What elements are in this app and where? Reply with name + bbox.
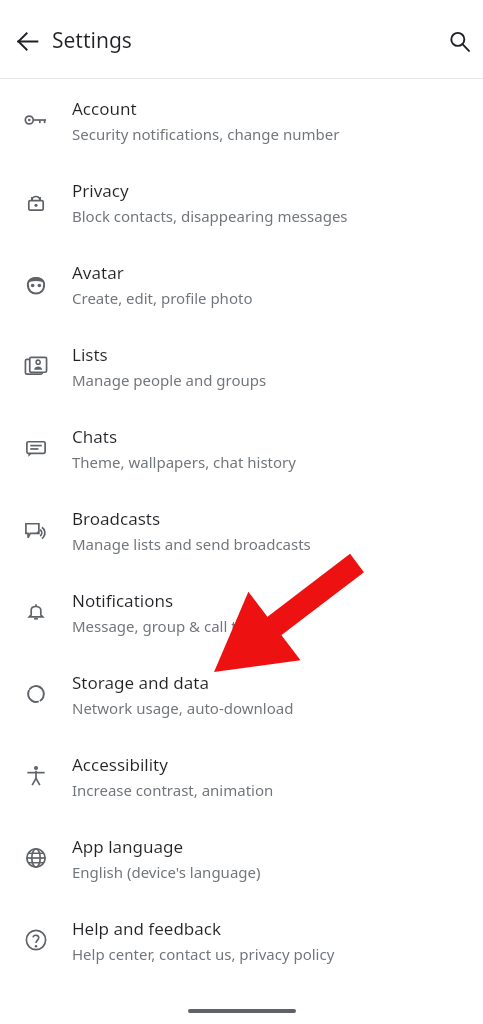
staticText: Account [72, 97, 137, 120]
staticText: Help and feedback [72, 917, 222, 940]
staticText: Storage and data [72, 671, 210, 694]
staticText: Broadcasts [72, 507, 161, 530]
staticText: Chats [72, 425, 118, 448]
button[interactable]: Storage and data [0, 653, 483, 735]
button[interactable]: Broadcasts [0, 489, 483, 571]
button[interactable]: Chats [0, 407, 483, 489]
staticText: Manage lists and send broadcasts [72, 534, 311, 554]
staticText: Increase contrast, animation [72, 780, 274, 800]
staticText: Privacy [72, 179, 129, 202]
staticText: Lists [72, 343, 108, 366]
staticText: Accessibility [72, 753, 168, 776]
button[interactable]: Privacy [0, 161, 483, 243]
staticText: Create, edit, profile photo [72, 288, 253, 308]
staticText: Block contacts, disappearing messages [72, 206, 348, 226]
staticText: Network usage, auto-download [72, 698, 294, 718]
staticText: Message, group & call tones [72, 616, 271, 636]
button[interactable]: App language [0, 817, 483, 899]
button[interactable]: Account [0, 79, 483, 161]
staticText: Security notifications, change number [72, 124, 340, 144]
staticText: Avatar [72, 261, 124, 284]
staticText: Notifications [72, 589, 174, 612]
staticText: Settings [52, 26, 132, 55]
button[interactable]: Notifications [0, 571, 483, 653]
button[interactable]: Avatar [0, 243, 483, 325]
button[interactable]: Lists [0, 325, 483, 407]
button[interactable]: Search [438, 20, 480, 62]
staticText: App language [72, 835, 184, 858]
button[interactable]: Back [6, 20, 48, 62]
button[interactable]: Accessibility [0, 735, 483, 817]
staticText: Manage people and groups [72, 370, 267, 390]
button[interactable]: Help and feedback [0, 899, 483, 981]
staticText: English (device's language) [72, 862, 261, 882]
staticText: Help center, contact us, privacy policy [72, 944, 335, 964]
staticText: Theme, wallpapers, chat history [72, 452, 296, 472]
